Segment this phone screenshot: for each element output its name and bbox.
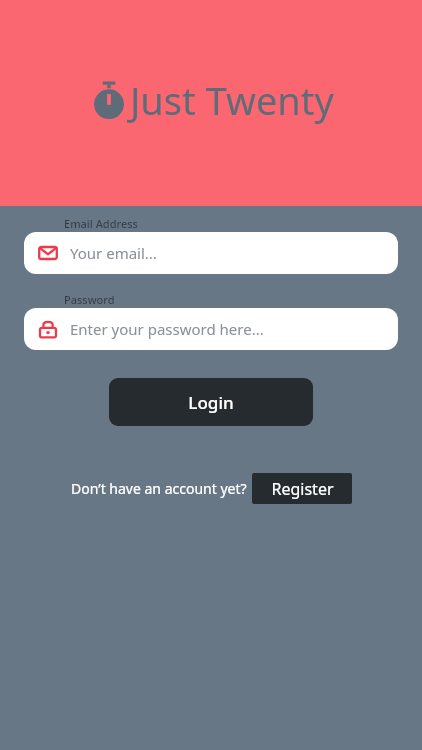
staticText: Login xyxy=(188,391,234,414)
staticText: Register xyxy=(271,478,334,500)
button[interactable]: Email xyxy=(24,232,398,274)
other: Email xyxy=(38,243,58,263)
other: Just Twenty logo xyxy=(88,79,130,121)
staticText: Your email... xyxy=(70,243,157,263)
staticText: Email Address xyxy=(64,216,138,231)
button[interactable]: Login xyxy=(109,378,313,426)
button[interactable]: Register xyxy=(252,473,352,504)
staticText: Don’t have an account yet? xyxy=(71,479,247,498)
button[interactable]: Password xyxy=(24,308,398,350)
staticText: Password xyxy=(64,292,115,307)
staticText: Enter your password here... xyxy=(70,319,264,339)
staticText: Just Twenty xyxy=(130,74,334,126)
other: Password xyxy=(38,319,58,339)
